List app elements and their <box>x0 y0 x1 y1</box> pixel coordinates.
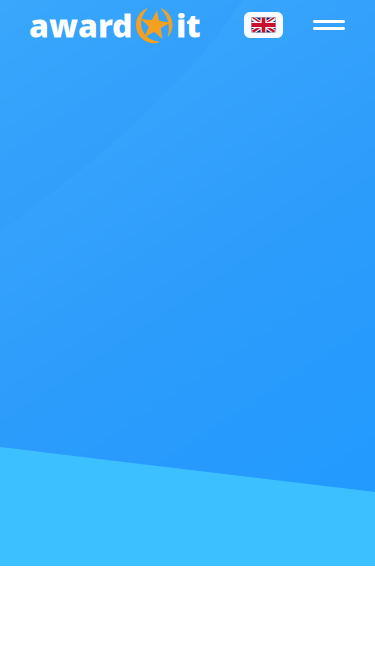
button[interactable]: Change language <box>244 0 283 50</box>
button[interactable]: award it home <box>29 4 201 46</box>
staticText: it <box>176 4 201 46</box>
staticText: award <box>29 4 133 46</box>
button[interactable]: Menu <box>298 0 360 50</box>
